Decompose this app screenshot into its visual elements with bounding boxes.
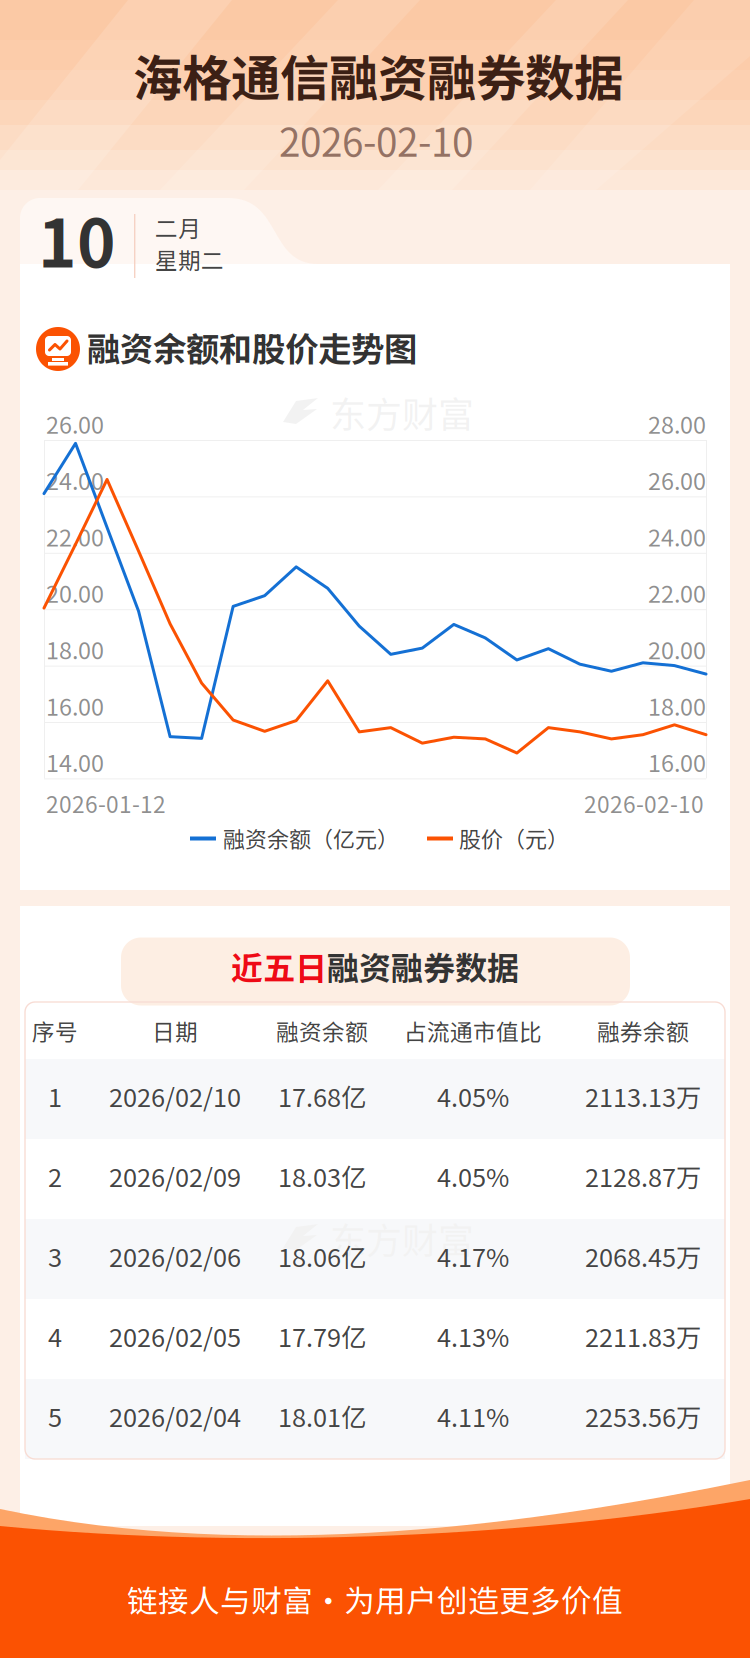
staticText: 18.00 [648,689,706,722]
staticText: 14.00 [46,745,104,779]
staticText: 2128.87万 [585,1158,701,1194]
staticText: 东方财富 [330,1212,474,1264]
staticText: 16.00 [648,745,706,779]
staticText: 融资融券数据 [327,943,519,989]
staticText: 20.00 [46,576,104,610]
staticText: 18.00 [46,632,104,666]
staticText: 链接人与财富·为用户创造更多价值 [127,1577,623,1621]
staticText: 4.13% [437,1318,509,1354]
staticText: 股价（元） [459,822,569,854]
staticText: 28.00 [648,407,706,440]
staticText: 序号 [32,1014,78,1047]
staticText: 2211.83万 [585,1318,701,1354]
staticText: 26.00 [46,407,104,440]
staticText: 4 [48,1318,62,1354]
staticText: 5 [48,1398,62,1434]
staticText: 融券余额 [597,1014,689,1047]
staticText: 近五日 [231,943,327,989]
staticText: 26.00 [648,463,706,497]
staticText: 占流通市值比 [404,1014,542,1047]
staticText: 16.00 [46,689,104,722]
staticText: 融资余额和股价走势图 [87,323,417,371]
staticText: 4.17% [437,1238,509,1274]
staticText: 日期 [152,1014,198,1047]
staticText: 2026-02-10 [279,112,473,168]
staticText: 2026-02-10 [584,787,704,819]
staticText: 2026/02/04 [109,1398,241,1434]
staticText: 4.11% [437,1398,509,1434]
staticText: 18.03亿 [278,1158,366,1194]
staticText: 融资余额（亿元） [223,822,399,854]
staticText: 二月 [155,211,201,243]
staticText: 2026/02/09 [109,1158,241,1194]
staticText: 17.79亿 [278,1318,366,1354]
staticText: 18.06亿 [278,1238,366,1274]
staticText: 1 [48,1078,62,1114]
staticText: 3 [48,1238,62,1274]
staticText: 18.01亿 [278,1398,366,1434]
staticText: 20.00 [648,632,706,666]
staticText: 17.68亿 [278,1078,366,1114]
staticText: 4.05% [437,1078,509,1114]
staticText: 2113.13万 [585,1078,701,1114]
staticText: 星期二 [155,243,224,275]
staticText: 24.00 [648,519,706,553]
staticText: 2253.56万 [585,1398,701,1434]
staticText: 2 [48,1158,62,1194]
staticText: 10 [38,192,116,286]
staticText: 24.00 [46,463,104,497]
staticText: 2026/02/10 [109,1078,241,1114]
staticText: 4.05% [437,1158,509,1194]
staticText: 东方财富 [330,386,474,438]
staticText: 22.00 [648,576,706,610]
staticText: 2026-01-12 [46,787,166,819]
staticText: 2026/02/06 [109,1238,241,1274]
staticText: 2026/02/05 [109,1318,241,1354]
staticText: 融资余额 [276,1014,368,1047]
staticText: 22.00 [46,519,104,553]
staticText: 2068.45万 [585,1238,701,1274]
staticText: 海格通信融资融券数据 [133,39,623,111]
